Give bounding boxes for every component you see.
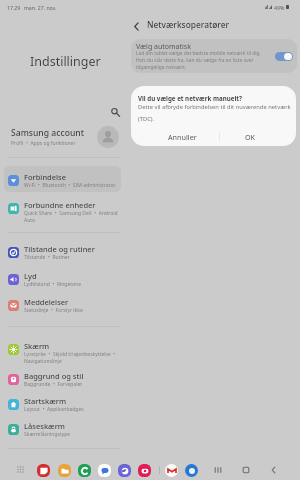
staticText: Baggrunde • Farvepalet [24, 381, 125, 388]
staticText: Lad din tablet vælge det bedste mobile n… [136, 50, 261, 71]
button[interactable]: App [138, 464, 151, 477]
staticText: Layout • Appikonbadges [24, 406, 125, 413]
staticText: Lysstyrke • Skjold til øjenbeskyttelse •… [24, 351, 125, 364]
staticText: Quick Share • Samsung DeX • Android Auto [24, 210, 125, 223]
button[interactable]: Back [128, 18, 144, 34]
button[interactable]: Meddelelser [6, 292, 125, 318]
button[interactable]: App [58, 464, 71, 477]
button[interactable]: Startskærm [6, 391, 125, 417]
staticText: Statuslinje • Forstyr ikke [24, 307, 125, 314]
staticText: Tilstande • Rutiner [24, 254, 125, 261]
button[interactable]: App [185, 464, 198, 477]
staticText: Vælg automatisk [136, 42, 191, 52]
staticText: Samsung account [11, 127, 84, 139]
staticText: Indstillinger [30, 53, 101, 70]
staticText: Wi-Fi • Bluetooth • SIM-administrator [24, 182, 125, 189]
staticText: Dette vil afbryde forbindelsen til dit n… [138, 103, 293, 123]
button[interactable]: Back [267, 463, 281, 477]
staticText: Lydtilstand • Ringetone [24, 281, 125, 288]
staticText: Lyd [24, 271, 37, 281]
button[interactable]: Samsung account [0, 124, 128, 150]
button[interactable]: Lyd [6, 266, 125, 292]
button[interactable]: Recents [211, 463, 225, 477]
button[interactable]: Skærm [6, 336, 125, 362]
button[interactable]: Vælg automatisk [131, 39, 297, 73]
staticText: Profil • Apps og funktioner [11, 140, 76, 147]
staticText: Netværksoperatører [147, 19, 230, 30]
staticText: Vil du vælge et netværk manuelt? [138, 94, 242, 102]
button[interactable]: App [118, 464, 131, 477]
button[interactable]: OK [220, 127, 280, 146]
button[interactable]: Search [107, 105, 121, 119]
staticText: Skærm [24, 341, 50, 351]
staticText: Låseskærm [24, 421, 65, 431]
staticText: man. 27. nov. [24, 4, 57, 11]
staticText: Meddelelser [24, 297, 69, 307]
staticText: Skærmlåsningstype [24, 431, 125, 438]
button[interactable]: Apps [16, 465, 25, 474]
button[interactable]: App [37, 464, 50, 477]
staticText: Baggrund og stil [24, 371, 84, 381]
button[interactable]: Forbundne enheder [6, 195, 125, 221]
button[interactable]: Annuller [152, 127, 212, 146]
button[interactable]: App [98, 464, 111, 477]
staticText: OK [245, 132, 256, 142]
staticText: 17.29 [7, 4, 21, 11]
button[interactable]: Låseskærm [6, 416, 125, 442]
staticText: Forbindelse [24, 172, 67, 182]
button[interactable]: Home [239, 463, 253, 477]
button[interactable]: Tilstande og rutiner [6, 239, 125, 265]
button[interactable]: Vælg automatisk [275, 52, 293, 61]
staticText: Tilstande og rutiner [24, 244, 95, 254]
staticText: 49% [274, 4, 285, 11]
staticText: Startskærm [24, 396, 67, 406]
button[interactable]: Forbindelse [6, 167, 125, 193]
button[interactable]: Baggrund og stil [6, 366, 125, 392]
button[interactable]: Gmail [165, 464, 178, 477]
staticText: Forbundne enheder [24, 200, 96, 210]
staticText: Annuller [168, 132, 197, 142]
button[interactable]: App [78, 464, 91, 477]
